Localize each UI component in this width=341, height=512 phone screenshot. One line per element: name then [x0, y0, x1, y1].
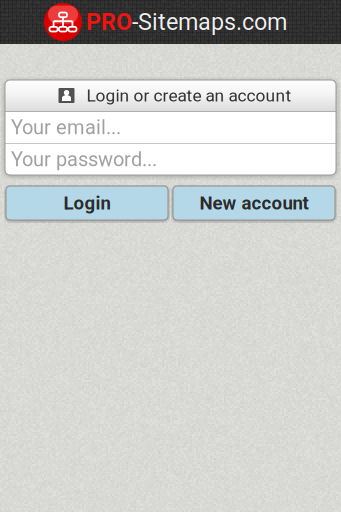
- button[interactable]: New account: [173, 186, 335, 220]
- staticText: Your email...: [11, 116, 121, 139]
- staticText: PRO: [86, 8, 132, 36]
- staticText: New account: [199, 192, 308, 214]
- button[interactable]: Login: [6, 186, 168, 220]
- staticText: -Sitemaps.com: [132, 8, 287, 36]
- staticText: Login or create an account: [74, 85, 291, 106]
- staticText: Login: [63, 192, 110, 214]
- staticText: Your password...: [11, 148, 157, 171]
